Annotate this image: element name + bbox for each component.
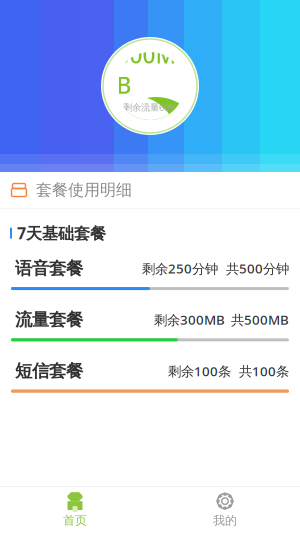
staticText: 我的 [213,513,237,528]
button[interactable]: 我的 [150,487,300,533]
button[interactable]: 语音套餐 [0,258,300,309]
staticText: 剩余300MB 共500MB [154,311,289,328]
button[interactable]: 首页 [0,487,150,533]
staticText: 短信套餐 [15,360,83,382]
staticText: 首页 [63,513,87,528]
staticText: 剩余250分钟 共500分钟 [142,259,289,277]
staticText: 300MB [116,40,183,100]
staticText: 流量套餐 [15,309,83,330]
button[interactable]: 短信套餐 [0,360,300,412]
staticText: 语音套餐 [15,258,83,279]
button[interactable]: 流量套餐 [0,309,300,360]
staticText: 剩余100条 共100条 [168,362,289,380]
staticText: 7天基础套餐 [17,222,106,244]
staticText: 套餐使用明细 [36,180,132,200]
staticText: 剩余流量60% [123,101,177,113]
